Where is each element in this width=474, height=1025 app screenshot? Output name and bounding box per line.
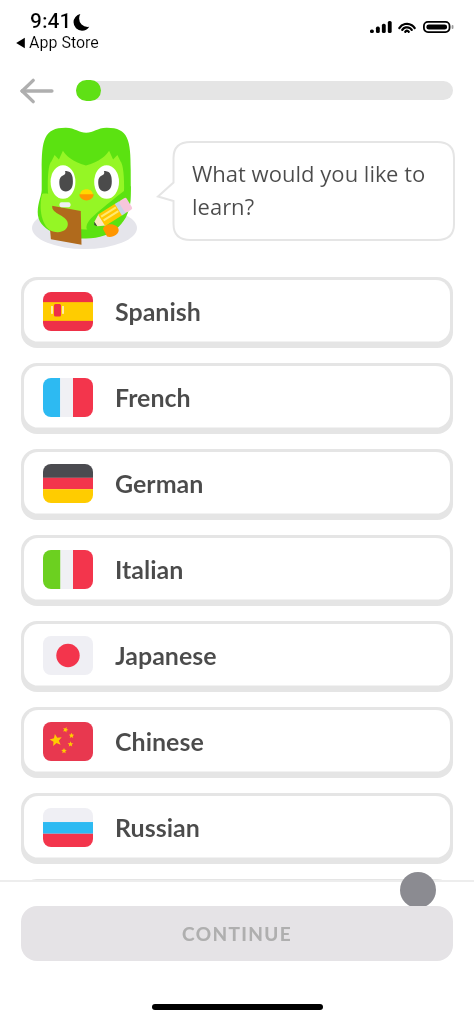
button[interactable]: Chinese — [21, 707, 453, 778]
button[interactable]: Russian — [21, 793, 453, 864]
staticText: French — [115, 382, 191, 412]
staticText: Chinese — [115, 726, 204, 756]
staticText: 9:41 — [30, 9, 72, 34]
staticText: Italian — [115, 554, 184, 584]
staticText: Russian — [115, 812, 200, 842]
button[interactable]: French — [21, 363, 453, 434]
button[interactable]: Spanish — [21, 277, 453, 348]
staticText: What would you like to learn? — [192, 158, 441, 222]
button[interactable]: Korean — [21, 879, 453, 881]
button[interactable]: Japanese — [21, 621, 453, 692]
staticText: App Store — [29, 33, 99, 52]
button[interactable]: Back — [6, 69, 68, 113]
button[interactable]: German — [21, 449, 453, 520]
staticText: German — [115, 468, 204, 498]
button[interactable]: Italian — [21, 535, 453, 606]
staticText: CONTINUE — [182, 922, 293, 945]
staticText: Japanese — [115, 640, 217, 670]
staticText: Spanish — [115, 296, 201, 326]
button[interactable]: CONTINUE — [21, 906, 453, 961]
